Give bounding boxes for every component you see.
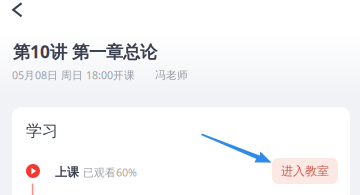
staticText: 上课 [55,165,79,180]
staticText: 05月08日 周日 18:00开课 [12,68,135,82]
staticText: 冯老师 [155,68,188,82]
staticText: 第10讲 第一章总论 [13,40,157,63]
button[interactable]: Back [0,0,42,24]
staticText: 进入教室 [281,164,329,178]
staticText: 已观看60% [83,165,137,179]
staticText: 学习 [26,121,58,141]
button[interactable]: 进入教室 [272,158,338,184]
